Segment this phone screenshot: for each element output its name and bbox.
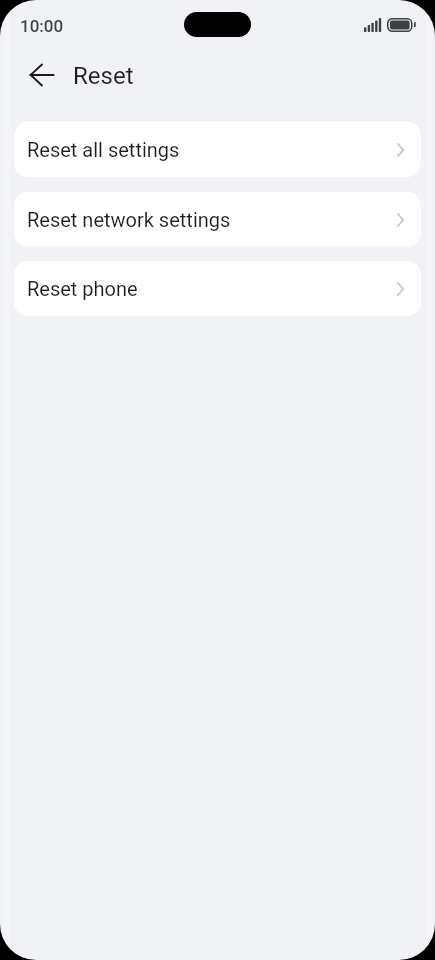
button[interactable]: Reset all settings	[14, 122, 421, 177]
button[interactable]: Back	[21, 54, 63, 96]
button[interactable]: Reset phone	[14, 261, 421, 316]
staticText: Reset	[73, 62, 134, 90]
staticText: Reset phone	[27, 277, 138, 300]
staticText: 10:00	[20, 16, 64, 36]
staticText: Reset network settings	[27, 208, 231, 231]
button[interactable]: Reset network settings	[14, 192, 421, 247]
staticText: Reset all settings	[27, 138, 180, 161]
